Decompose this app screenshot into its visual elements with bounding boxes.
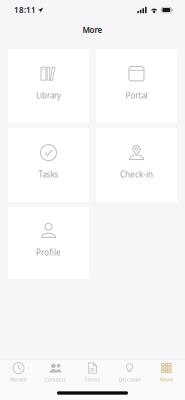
button[interactable]: Library [8,49,89,123]
staticText: Forms [84,376,100,383]
button[interactable]: More [148,359,185,385]
staticText: Profile [36,247,61,258]
button[interactable]: Contacts [37,359,74,385]
button[interactable]: Portal [96,49,177,123]
button[interactable]: Forms [74,359,111,385]
staticText: Portal [125,90,147,101]
button[interactable]: Profile [8,207,89,279]
staticText: More [160,376,173,383]
staticText: Tasks [38,169,58,180]
staticText: Check-in [120,169,153,180]
staticText: Contacts [44,376,66,383]
staticText: Discover [118,376,140,383]
button[interactable]: Check-in [96,128,177,202]
button[interactable]: Discover [111,359,148,385]
staticText: Recent [10,376,27,383]
staticText: Library [36,90,61,101]
staticText: 18:11 [14,5,36,15]
button[interactable]: Tasks [8,128,89,202]
staticText: More [82,25,102,35]
button[interactable]: Recent [0,359,37,385]
